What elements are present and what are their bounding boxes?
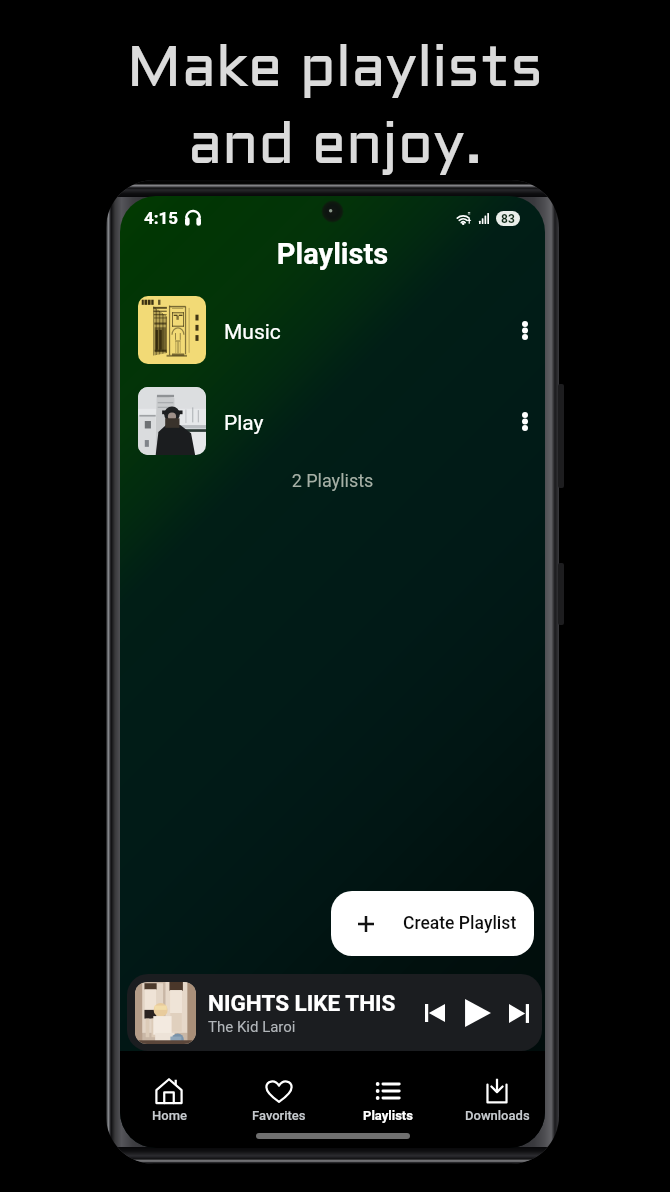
staticText: 4:15: [144, 208, 179, 228]
staticText: Home: [152, 1108, 187, 1123]
staticText: NIGHTS LIKE THIS: [208, 990, 396, 1016]
staticText: Playlists: [120, 237, 545, 271]
button[interactable]: Downloads: [447, 1077, 545, 1123]
staticText: and enjoy.: [0, 121, 670, 175]
staticText: Downloads: [465, 1108, 530, 1123]
staticText: Music: [224, 320, 281, 345]
button[interactable]: Play: [120, 380, 545, 462]
staticText: The Kid Laroi: [208, 1018, 296, 1036]
staticText: 83: [501, 212, 515, 226]
button[interactable]: Play: [457, 993, 497, 1033]
button[interactable]: Favorites: [229, 1077, 329, 1123]
button[interactable]: Create Playlist: [331, 891, 534, 956]
button[interactable]: Next: [502, 996, 536, 1030]
button[interactable]: Music: [120, 289, 545, 371]
button[interactable]: More options: [507, 403, 543, 439]
staticText: Playlists: [363, 1108, 413, 1123]
button[interactable]: Previous: [418, 996, 452, 1030]
button[interactable]: More options: [507, 312, 543, 348]
staticText: 2 Playlists: [120, 470, 545, 491]
staticText: Make playlists: [0, 44, 670, 98]
button[interactable]: Playlists: [338, 1077, 438, 1123]
staticText: Create Playlist: [403, 913, 517, 934]
staticText: Play: [224, 411, 264, 436]
staticText: Favorites: [252, 1108, 306, 1123]
button[interactable]: Home: [120, 1077, 219, 1123]
button[interactable]: NIGHTS LIKE THIS: [127, 974, 542, 1051]
